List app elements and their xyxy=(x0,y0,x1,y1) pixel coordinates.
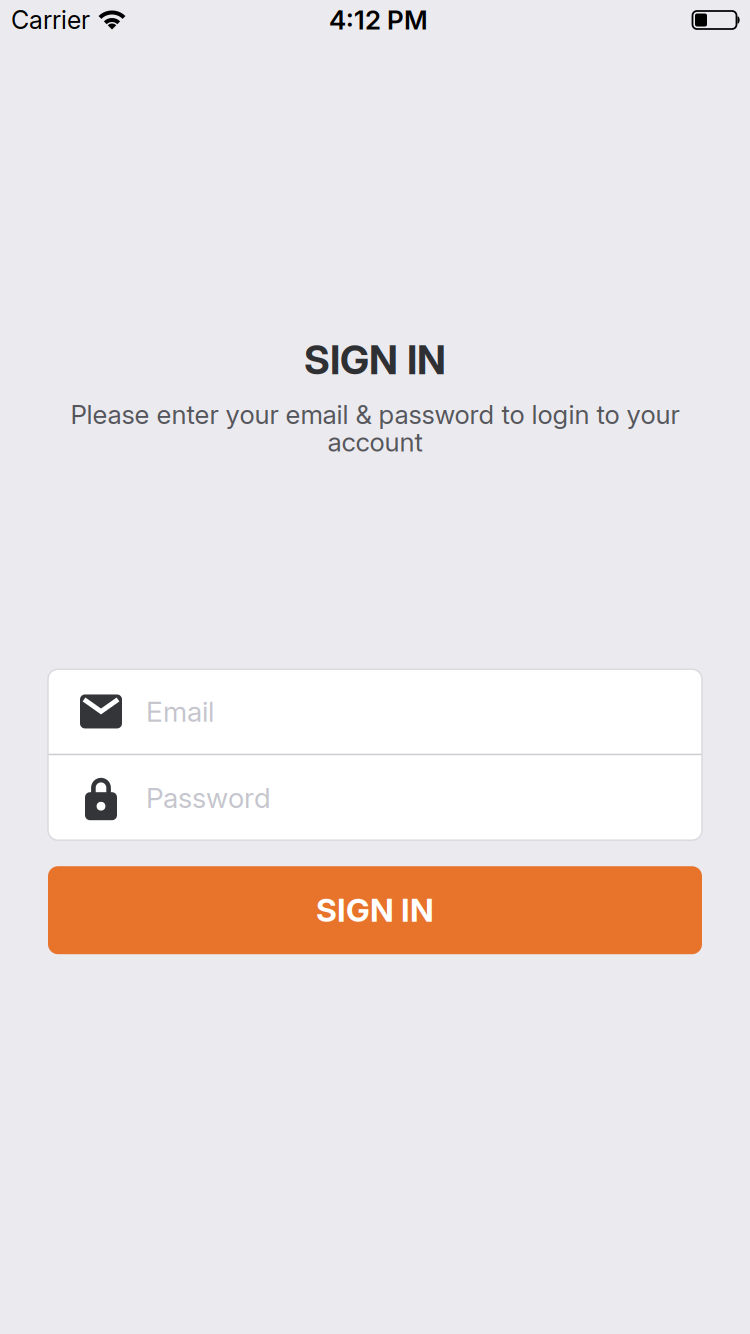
staticText: account xyxy=(327,426,422,458)
staticText: Email xyxy=(146,694,214,728)
staticText: Please enter your email & password to lo… xyxy=(70,399,679,430)
button[interactable]: Email xyxy=(48,669,702,754)
button[interactable]: SIGN IN xyxy=(48,866,702,954)
staticText: SIGN IN xyxy=(304,336,446,384)
staticText: 4:12 PM xyxy=(329,4,428,36)
staticText: Carrier xyxy=(11,5,90,35)
staticText: Password xyxy=(146,781,271,815)
staticText: SIGN IN xyxy=(316,891,434,930)
button[interactable]: Password xyxy=(48,755,702,840)
